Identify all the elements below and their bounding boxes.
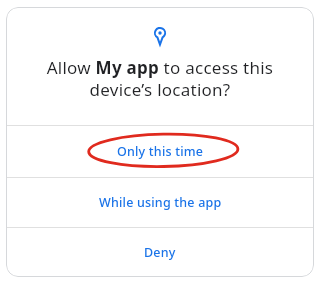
button[interactable]: While using the app [6, 178, 314, 227]
button[interactable]: Deny [6, 228, 314, 277]
staticText: Only this time [117, 143, 204, 160]
staticText: While using the app [99, 194, 222, 211]
button[interactable]: Only this time [6, 126, 314, 177]
staticText: Allow My app to access this device’s loc… [6, 56, 314, 101]
staticText: Deny [144, 244, 176, 261]
